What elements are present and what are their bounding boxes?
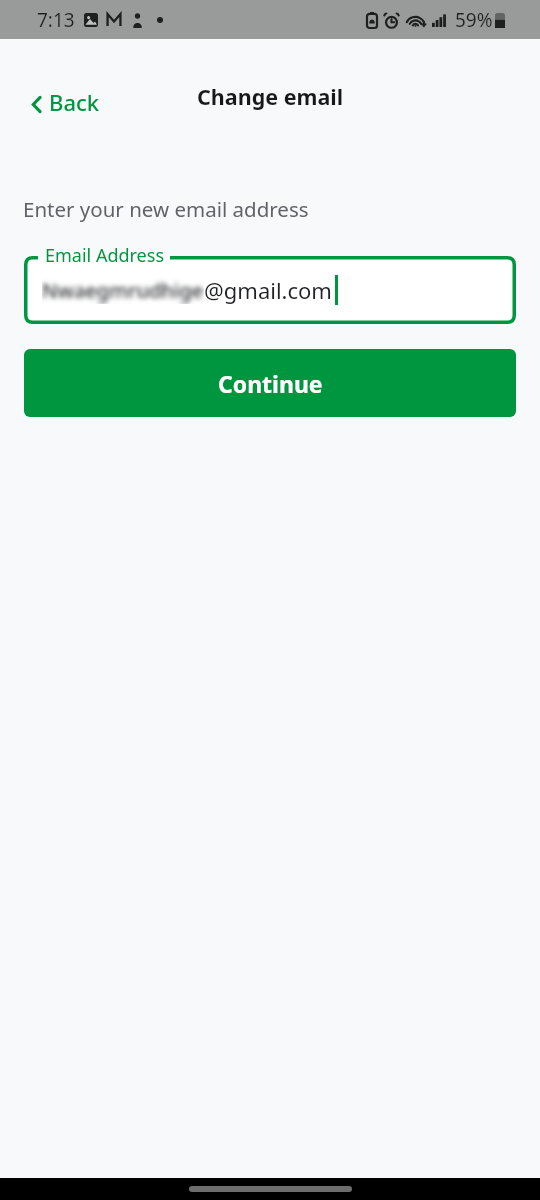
staticText: Back (49, 87, 100, 117)
button[interactable]: Email Address text field (24, 256, 516, 324)
staticText: Enter your new email address (23, 195, 309, 223)
button[interactable]: Continue (24, 349, 516, 417)
staticText: Change email (197, 82, 344, 111)
button[interactable]: Back (22, 79, 110, 125)
staticText: Continue (218, 368, 323, 399)
staticText: 59% (455, 7, 493, 33)
staticText: Email Address (45, 243, 165, 268)
staticText: Nwaegmrudhige (42, 277, 204, 304)
staticText: @gmail.com (204, 275, 332, 305)
staticText: 7:13 (37, 7, 75, 33)
